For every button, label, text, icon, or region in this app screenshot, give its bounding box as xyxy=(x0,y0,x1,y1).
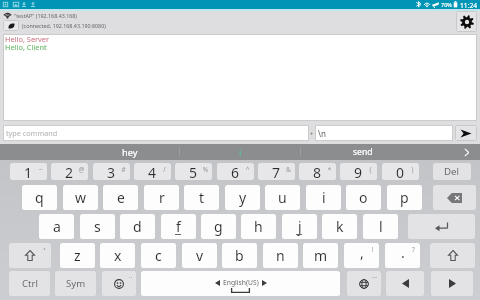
button[interactable]: 0 xyxy=(382,163,419,180)
button[interactable]: o xyxy=(346,185,381,210)
staticText: z xyxy=(74,246,81,265)
button[interactable]: 1 xyxy=(10,163,47,180)
button[interactable]: 5 xyxy=(175,163,212,180)
staticText: a xyxy=(53,217,61,236)
button[interactable]: 6 xyxy=(217,163,254,180)
staticText: v xyxy=(196,246,204,265)
staticText: 2 xyxy=(65,163,74,180)
staticText: (connected, 192.168.43.190:8080) xyxy=(22,22,106,29)
button[interactable]: v xyxy=(182,243,217,268)
staticText: Hello, Client xyxy=(5,42,47,52)
staticText: 5 xyxy=(189,163,198,180)
button[interactable]: e xyxy=(103,185,138,210)
button[interactable]: i xyxy=(306,185,341,210)
staticText: s xyxy=(94,217,101,236)
button[interactable]: Enter xyxy=(408,214,475,239)
button[interactable]: q xyxy=(22,185,57,210)
staticText: d xyxy=(133,217,142,236)
staticText: Ctrl xyxy=(22,277,38,290)
button[interactable]: a xyxy=(39,214,74,239)
button[interactable]: x xyxy=(100,243,135,268)
staticText: l xyxy=(379,217,383,236)
staticText: u xyxy=(278,188,287,207)
button[interactable]: 9 xyxy=(340,163,377,180)
button[interactable]: r xyxy=(144,185,179,210)
button[interactable]: send xyxy=(301,144,453,160)
button[interactable]: u xyxy=(265,185,300,210)
button[interactable]: Del xyxy=(433,163,471,180)
staticText: ··· xyxy=(370,273,379,282)
staticText: i xyxy=(322,188,326,207)
button[interactable]: , xyxy=(344,243,379,268)
button[interactable]: Space xyxy=(141,271,340,296)
button[interactable]: More suggestions xyxy=(453,144,480,160)
button[interactable]: Sym xyxy=(55,271,96,296)
button[interactable]: y xyxy=(225,185,260,210)
button[interactable]: Change language xyxy=(347,271,381,296)
button[interactable]: s xyxy=(80,214,115,239)
staticText: send xyxy=(353,146,373,158)
staticText: ~ xyxy=(36,165,45,174)
button[interactable]: Ctrl xyxy=(9,271,50,296)
staticText: i xyxy=(239,146,242,159)
button[interactable]: 2 xyxy=(51,163,88,180)
button[interactable]: Emoji xyxy=(102,271,136,296)
staticText: ^ xyxy=(243,165,252,174)
button[interactable]: l xyxy=(363,214,398,239)
button[interactable]: b xyxy=(222,243,257,268)
button[interactable]: . xyxy=(385,243,420,268)
staticText: * xyxy=(325,165,334,174)
button[interactable]: z xyxy=(60,243,95,268)
button[interactable]: hey xyxy=(0,144,179,160)
button[interactable]: w xyxy=(63,185,98,210)
button[interactable]: c xyxy=(141,243,176,268)
button[interactable]: j xyxy=(282,214,317,239)
button[interactable]: d xyxy=(120,214,155,239)
staticText: 70% xyxy=(441,1,452,8)
button[interactable]: 3 xyxy=(93,163,130,180)
staticText: hey xyxy=(122,146,138,159)
staticText: 11:24 xyxy=(460,1,478,10)
button[interactable]: Shift xyxy=(430,243,475,268)
staticText: "testAP" (192.168.43.168) xyxy=(14,12,77,19)
button[interactable]: p xyxy=(387,185,422,210)
staticText: g xyxy=(214,217,223,236)
staticText: / xyxy=(160,165,169,174)
button[interactable]: type command xyxy=(3,125,309,141)
button[interactable]: m xyxy=(303,243,338,268)
button[interactable]: Shift xyxy=(9,243,51,268)
staticText: w xyxy=(75,188,87,207)
staticText: f xyxy=(176,217,181,236)
staticText: • xyxy=(40,245,49,254)
button[interactable]: n xyxy=(263,243,298,268)
button[interactable]: k xyxy=(322,214,357,239)
button[interactable]: 7 xyxy=(258,163,295,180)
button[interactable]: 8 xyxy=(299,163,336,180)
staticText: o xyxy=(359,188,368,207)
button[interactable]: g xyxy=(201,214,236,239)
button[interactable]: f xyxy=(161,214,196,239)
staticText: h xyxy=(254,217,263,236)
button[interactable]: Move left xyxy=(386,271,424,296)
staticText: ·· xyxy=(126,273,135,282)
button[interactable]: Move right xyxy=(431,271,473,296)
button[interactable]: 4 xyxy=(134,163,171,180)
button[interactable]: Settings xyxy=(456,11,477,32)
staticText: ! xyxy=(368,245,377,254)
staticText: Del xyxy=(444,165,460,178)
button[interactable]: Disconnect xyxy=(3,20,19,31)
button[interactable]: Backspace xyxy=(433,185,476,210)
staticText: ) xyxy=(408,165,417,174)
staticText: ? xyxy=(409,245,418,254)
button[interactable]: h xyxy=(241,214,276,239)
staticText: 4 xyxy=(148,163,157,180)
staticText: . xyxy=(401,243,405,262)
staticText: 0 xyxy=(396,163,405,180)
staticText: Sym xyxy=(66,277,86,290)
staticText: & xyxy=(284,165,293,174)
button[interactable]: t xyxy=(184,185,219,210)
button[interactable]: Send xyxy=(455,125,477,141)
button[interactable]: \n xyxy=(315,125,453,141)
staticText: p xyxy=(400,188,409,207)
